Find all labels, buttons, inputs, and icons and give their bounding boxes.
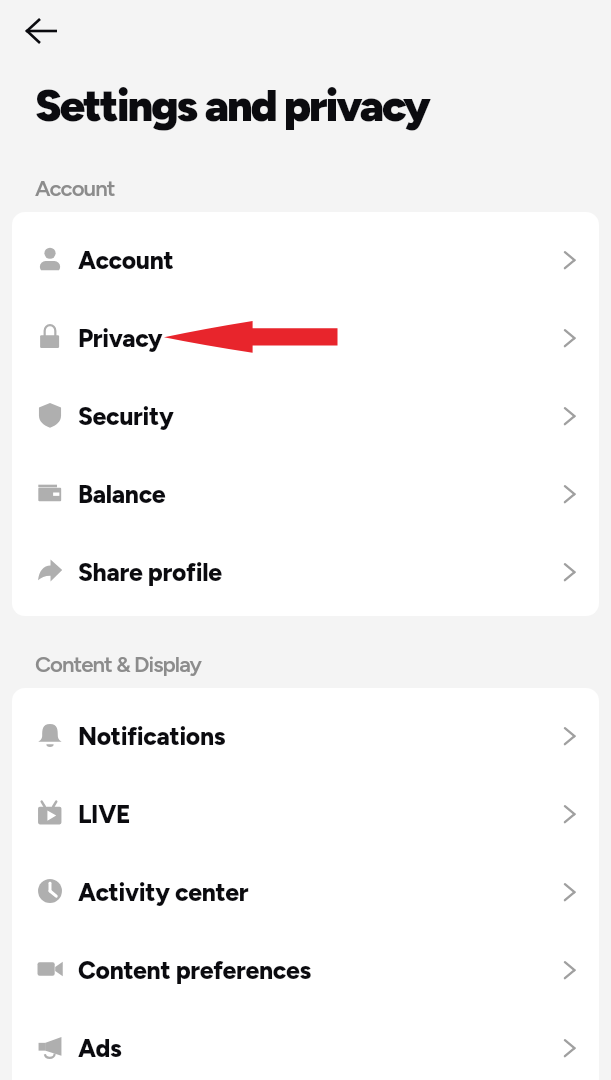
- staticText: Account: [78, 246, 174, 276]
- button[interactable]: Account: [12, 220, 599, 298]
- staticText: LIVE: [78, 800, 131, 830]
- staticText: Security: [78, 402, 174, 432]
- staticText: Activity center: [78, 878, 249, 908]
- button[interactable]: Ads: [12, 1008, 599, 1080]
- button[interactable]: Content preferences: [12, 930, 599, 1008]
- button[interactable]: Security: [12, 376, 599, 454]
- button[interactable]: Activity center: [12, 852, 599, 930]
- staticText: Ads: [78, 1034, 122, 1064]
- button[interactable]: Balance: [12, 454, 599, 532]
- button[interactable]: Share profile: [12, 532, 599, 610]
- staticText: Content & Display: [35, 651, 202, 678]
- button[interactable]: LIVE: [12, 774, 599, 852]
- button[interactable]: Notifications: [12, 696, 599, 774]
- staticText: Settings and privacy: [35, 79, 429, 133]
- staticText: Notifications: [78, 722, 226, 752]
- staticText: Content preferences: [78, 956, 312, 986]
- button[interactable]: Back: [14, 6, 68, 56]
- staticText: Balance: [78, 480, 166, 510]
- staticText: Privacy: [78, 324, 163, 354]
- staticText: Account: [35, 175, 115, 202]
- button[interactable]: Privacy: [12, 298, 599, 376]
- staticText: Share profile: [78, 558, 222, 588]
